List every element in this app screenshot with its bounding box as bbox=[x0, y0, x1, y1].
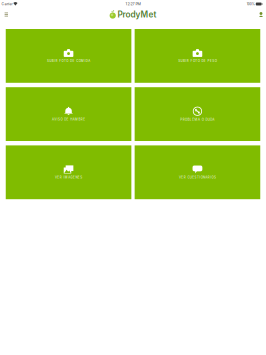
staticText: ProdyMet bbox=[117, 9, 156, 19]
staticText: VER CUESTIONARIOS bbox=[179, 175, 216, 179]
button[interactable]: Account bbox=[256, 8, 266, 21]
button[interactable]: VER CUESTIONARIOS bbox=[135, 145, 260, 199]
staticText: VER IMAGENES bbox=[55, 176, 82, 179]
button[interactable]: SUBIR FOTO DE COMIDA bbox=[6, 29, 131, 83]
button[interactable]: VER IMAGENES bbox=[6, 145, 131, 199]
button[interactable]: PROBLEMA O DUDA bbox=[135, 87, 260, 141]
staticText: AVISO DE HAMBRE bbox=[52, 118, 85, 121]
button[interactable]: Menu bbox=[0, 8, 13, 21]
staticText: 100% bbox=[247, 2, 255, 6]
staticText: 12:27 PM bbox=[125, 2, 140, 6]
staticText: SUBIR FOTO DE COMIDA bbox=[47, 59, 90, 63]
staticText: Carrier bbox=[1, 2, 12, 6]
staticText: SUBIR FOTO DE PESO bbox=[178, 59, 217, 63]
staticText: PROBLEMA O DUDA bbox=[180, 118, 215, 121]
button[interactable]: AVISO DE HAMBRE bbox=[6, 87, 131, 141]
button[interactable]: SUBIR FOTO DE PESO bbox=[135, 29, 260, 83]
